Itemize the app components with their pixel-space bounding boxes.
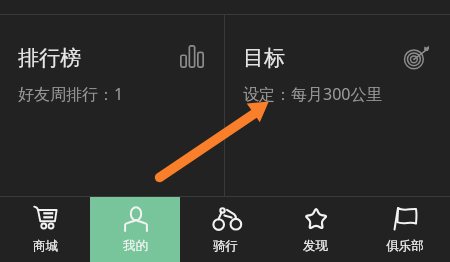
button[interactable]: 发现 — [270, 197, 360, 262]
staticText: 设定：每月300公里 — [243, 83, 383, 105]
button[interactable]: 俱乐部 — [360, 197, 450, 262]
button[interactable]: 排行榜 — [0, 15, 224, 196]
button[interactable]: 目标 — [225, 15, 450, 196]
other: 我的 — [124, 206, 148, 230]
staticText: 好友周排行：1 — [18, 83, 124, 105]
staticText: 发现 — [303, 238, 328, 254]
staticText: 商城 — [33, 238, 58, 254]
other: 发现 — [304, 206, 328, 230]
button[interactable]: 商城 — [0, 197, 90, 262]
other: 俱乐部 — [393, 206, 417, 230]
button[interactable]: 骑行 — [180, 197, 270, 262]
staticText: 排行榜 — [18, 45, 81, 71]
staticText: 俱乐部 — [386, 238, 424, 254]
other: 商城 — [34, 206, 58, 230]
button[interactable]: 我的 — [90, 197, 180, 262]
staticText: 目标 — [243, 45, 285, 71]
other: 骑行 — [214, 206, 238, 230]
staticText: 骑行 — [213, 238, 238, 254]
staticText: 我的 — [123, 238, 148, 254]
